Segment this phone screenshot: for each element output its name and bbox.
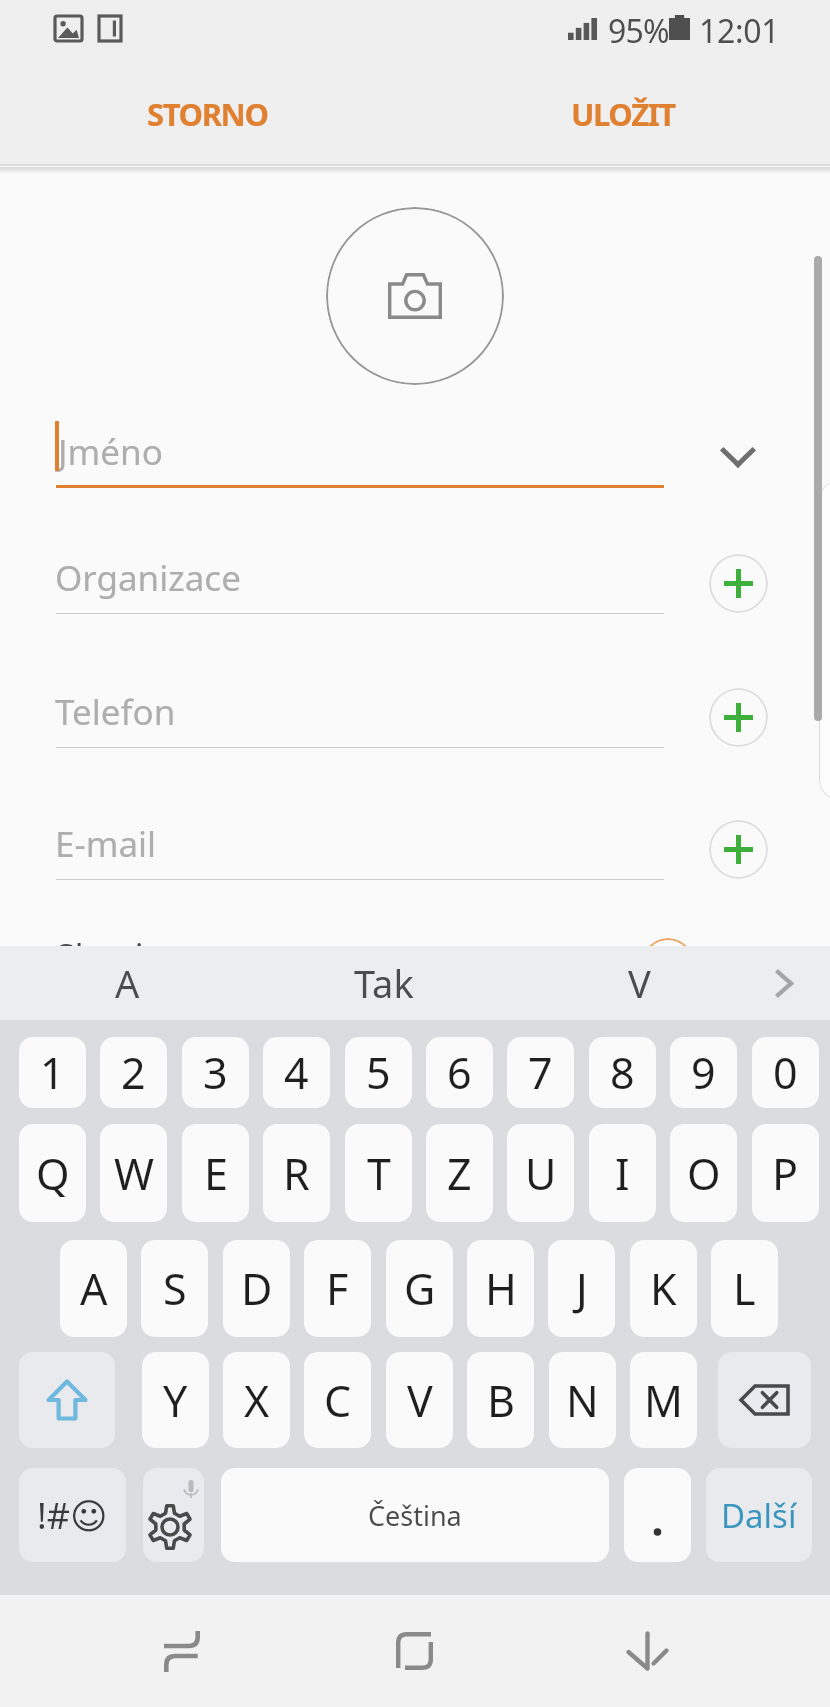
button[interactable]: J	[548, 1240, 615, 1337]
staticText: H	[485, 1259, 517, 1318]
button[interactable]: Y	[142, 1352, 209, 1448]
staticText: Organizace	[55, 554, 241, 602]
staticText: E-mail	[55, 820, 157, 868]
button[interactable]: K	[630, 1240, 697, 1337]
staticText: 5	[366, 1043, 391, 1102]
button[interactable]: 7	[507, 1037, 574, 1108]
button[interactable]: Home	[298, 1595, 531, 1707]
staticText: U	[525, 1144, 557, 1203]
button[interactable]: N	[549, 1352, 616, 1448]
button[interactable]: Add E-mail	[690, 801, 786, 897]
button[interactable]: I	[589, 1124, 656, 1222]
button[interactable]: Další	[706, 1468, 812, 1562]
button[interactable]: A	[2, 946, 252, 1020]
staticText: Jméno	[58, 428, 163, 476]
button[interactable]: 4	[263, 1037, 330, 1108]
staticText: D	[241, 1259, 273, 1318]
staticText: P	[772, 1144, 799, 1203]
staticText: 2	[121, 1043, 146, 1102]
staticText: J	[576, 1259, 588, 1318]
button[interactable]: 2	[100, 1037, 167, 1108]
button[interactable]	[624, 1468, 691, 1562]
staticText: W	[114, 1144, 154, 1203]
button[interactable]: H	[467, 1240, 534, 1337]
button[interactable]: Z	[426, 1124, 493, 1222]
staticText: E	[204, 1144, 228, 1203]
button[interactable]: 3	[182, 1037, 249, 1108]
button[interactable]: Tak	[259, 946, 509, 1020]
staticText: F	[326, 1259, 349, 1318]
staticText: Tak	[354, 957, 414, 1009]
button[interactable]: V	[386, 1352, 453, 1448]
button[interactable]: B	[467, 1352, 534, 1448]
button[interactable]: T	[345, 1124, 412, 1222]
button[interactable]: M	[630, 1352, 697, 1448]
staticText: Y	[163, 1371, 188, 1430]
staticText: 0	[773, 1043, 798, 1102]
button[interactable]: Q	[19, 1124, 86, 1222]
button[interactable]: Shift	[19, 1352, 115, 1448]
button[interactable]: ULOŽIT	[415, 64, 830, 166]
button[interactable]: X	[223, 1352, 290, 1448]
button[interactable]: Add Telefon	[690, 669, 786, 765]
staticText: Další	[721, 1493, 797, 1538]
staticText: ULOŽIT	[571, 93, 675, 135]
button[interactable]: F	[304, 1240, 371, 1337]
staticText: STORNO	[147, 93, 268, 135]
staticText: C	[324, 1371, 352, 1430]
staticText: A	[115, 957, 140, 1009]
button[interactable]: 5	[345, 1037, 412, 1108]
button[interactable]: A	[60, 1240, 127, 1337]
button[interactable]: E	[182, 1124, 249, 1222]
staticText: M	[644, 1371, 684, 1430]
staticText: !#☺	[37, 1491, 108, 1540]
button[interactable]: Jméno	[56, 400, 664, 488]
button[interactable]: Add Organizace	[690, 535, 786, 631]
button[interactable]: Recent apps	[66, 1595, 298, 1707]
staticText: V	[407, 1371, 433, 1430]
staticText: V	[628, 957, 651, 1009]
button[interactable]: E-mail	[56, 792, 664, 880]
button[interactable]: W	[100, 1124, 167, 1222]
button[interactable]: Čeština	[221, 1468, 609, 1562]
staticText: G	[404, 1259, 436, 1318]
staticText: A	[80, 1259, 108, 1318]
staticText: Čeština	[368, 1497, 462, 1534]
button[interactable]: R	[263, 1124, 330, 1222]
button[interactable]: O	[670, 1124, 737, 1222]
staticText: 95%	[608, 9, 669, 53]
button[interactable]: 1	[19, 1037, 86, 1108]
staticText: 6	[447, 1043, 472, 1102]
staticText: 12:01	[699, 9, 780, 53]
staticText: 9	[691, 1043, 716, 1102]
button[interactable]: C	[304, 1352, 371, 1448]
staticText: K	[650, 1259, 677, 1318]
button[interactable]: U	[507, 1124, 574, 1222]
button[interactable]: Backspace	[718, 1352, 811, 1448]
staticText: Skupiny	[56, 933, 182, 979]
button[interactable]: Expand name fields	[690, 409, 786, 505]
button[interactable]: More suggestions	[738, 946, 830, 1020]
button[interactable]: Add photo	[326, 207, 504, 385]
staticText: 8	[610, 1043, 635, 1102]
button[interactable]: Hide keyboard	[531, 1595, 764, 1707]
staticText: O	[687, 1144, 721, 1203]
button[interactable]: L	[711, 1240, 778, 1337]
button[interactable]: STORNO	[0, 64, 415, 166]
button[interactable]: !#☺	[19, 1468, 126, 1562]
button[interactable]: 9	[670, 1037, 737, 1108]
button[interactable]: P	[752, 1124, 819, 1222]
staticText: B	[487, 1371, 515, 1430]
staticText: 7	[528, 1043, 553, 1102]
button[interactable]: V	[514, 946, 764, 1020]
button[interactable]: 6	[426, 1037, 493, 1108]
button[interactable]: G	[386, 1240, 453, 1337]
button[interactable]: Keyboard settings	[143, 1468, 204, 1562]
button[interactable]: S	[141, 1240, 208, 1337]
button[interactable]: Organizace	[56, 526, 664, 614]
button[interactable]: 0	[752, 1037, 819, 1108]
button[interactable]: 8	[589, 1037, 656, 1108]
staticText: X	[244, 1371, 270, 1430]
button[interactable]: Telefon	[56, 660, 664, 748]
button[interactable]: D	[223, 1240, 290, 1337]
